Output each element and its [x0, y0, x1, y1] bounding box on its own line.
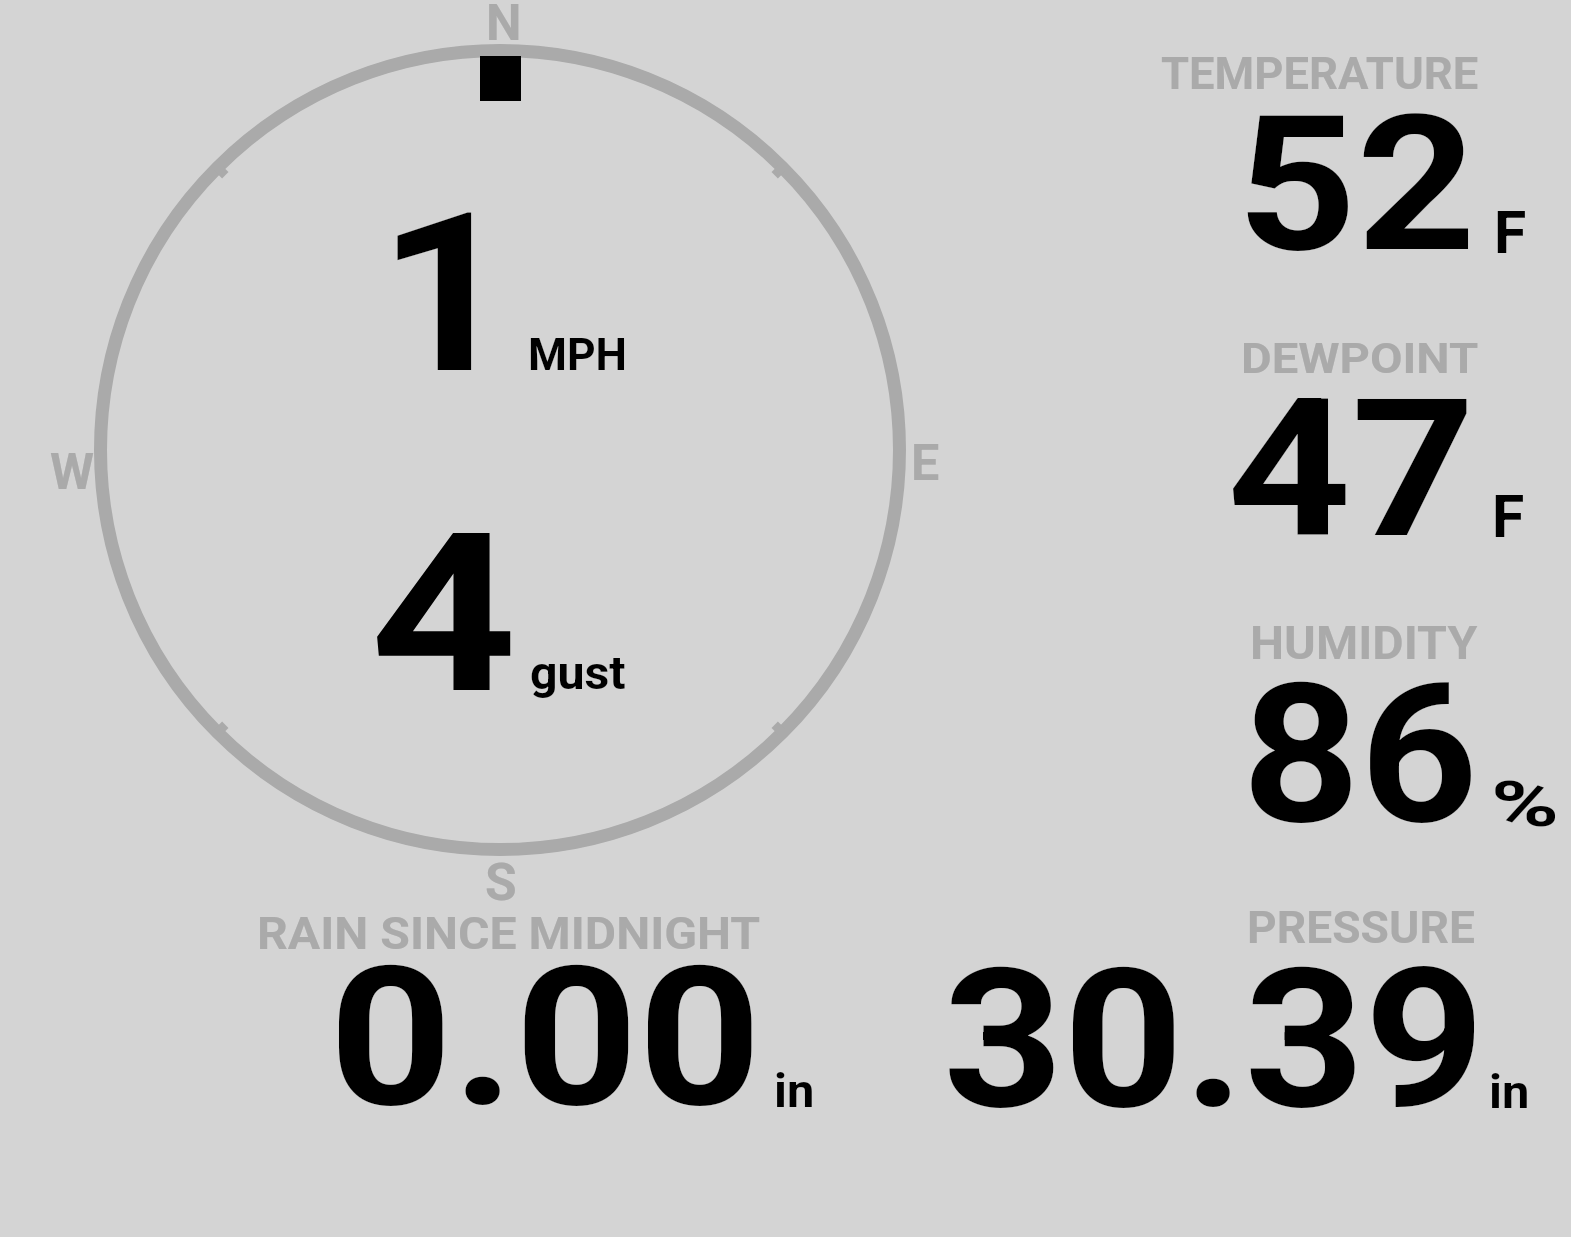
- button[interactable]: Dew point 47 degrees Fahrenheit: [1150, 330, 1560, 550]
- staticText: 86: [1242, 642, 1478, 868]
- staticText: HUMIDITY: [1250, 617, 1478, 670]
- button[interactable]: Wind: 1 miles per hour, gusting 4, from …: [95, 45, 905, 855]
- staticText: W: [50, 442, 95, 501]
- staticText: %: [1491, 768, 1560, 841]
- button[interactable]: Temperature 52 degrees Fahrenheit: [1150, 45, 1560, 265]
- staticText: 30.39: [943, 926, 1486, 1153]
- staticText: N: [486, 0, 522, 52]
- staticText: PRESSURE: [1247, 902, 1475, 953]
- button[interactable]: Rain since midnight 0.00 inches: [250, 900, 820, 1120]
- staticText: F: [1494, 199, 1527, 268]
- staticText: in: [774, 1064, 814, 1118]
- staticText: TEMPERATURE: [1161, 48, 1479, 99]
- staticText: RAIN SINCE MIDNIGHT: [257, 907, 760, 960]
- staticText: 4: [370, 485, 517, 744]
- staticText: F: [1492, 483, 1525, 552]
- staticText: DEWPOINT: [1241, 334, 1479, 384]
- staticText: 47: [1227, 358, 1477, 582]
- button[interactable]: Humidity 86 percent: [1150, 612, 1560, 832]
- staticText: MPH: [528, 328, 627, 381]
- button[interactable]: Pressure 30.39 inches: [935, 895, 1535, 1120]
- staticText: 0.00: [329, 925, 762, 1151]
- staticText: 1: [378, 165, 515, 424]
- staticText: 52: [1237, 76, 1477, 295]
- staticText: E: [911, 433, 940, 492]
- staticText: in: [1489, 1065, 1529, 1119]
- staticText: S: [485, 852, 517, 912]
- staticText: gust: [530, 646, 626, 701]
